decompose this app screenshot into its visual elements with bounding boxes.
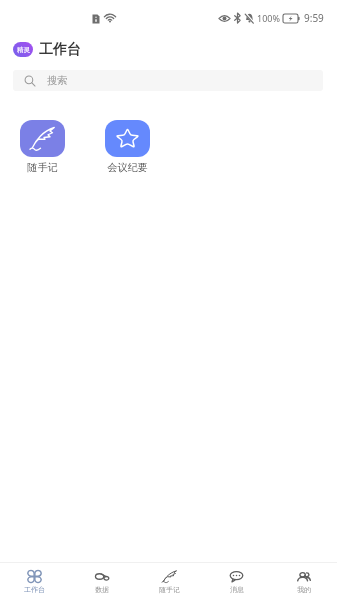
staticText: 随手记 (159, 585, 180, 594)
staticText: 消息 (230, 585, 244, 594)
staticText: 工作台 (39, 41, 81, 59)
button[interactable]: 我的 (270, 563, 337, 600)
button[interactable]: 数据 (68, 563, 136, 600)
staticText: 搜索 (47, 74, 68, 87)
staticText: 精灵 (17, 46, 30, 54)
button[interactable]: 工作台 (0, 563, 68, 600)
staticText: 数据 (95, 585, 109, 594)
staticText: 工作台 (24, 585, 45, 594)
button[interactable]: 消息 (203, 563, 270, 600)
button[interactable]: 会议纪要 (85, 120, 169, 174)
staticText: 会议纪要 (107, 161, 148, 174)
staticText: 我的 (297, 585, 311, 594)
button[interactable]: 随手记 (0, 120, 85, 174)
staticText: 随手记 (27, 161, 58, 174)
staticText: 100% (257, 12, 280, 24)
staticText: 9:59 (304, 11, 324, 25)
button[interactable]: 随手记 (136, 563, 203, 600)
button[interactable]: 搜索 (13, 70, 323, 91)
